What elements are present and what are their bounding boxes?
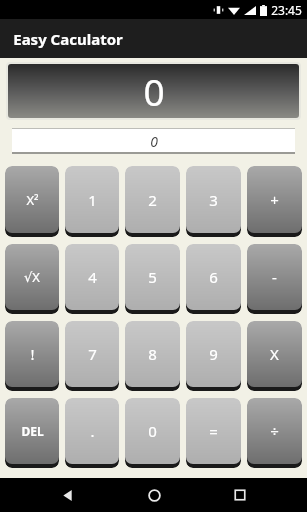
staticText: 1 bbox=[88, 190, 97, 210]
staticText: X bbox=[270, 344, 279, 364]
button[interactable]: - bbox=[247, 244, 302, 314]
button[interactable]: ÷ bbox=[247, 398, 302, 468]
button[interactable]: . bbox=[65, 398, 119, 468]
staticText: 5 bbox=[148, 267, 157, 287]
button[interactable]: √X bbox=[5, 244, 59, 314]
button[interactable]: 2 bbox=[125, 166, 180, 237]
staticText: ! bbox=[30, 344, 35, 364]
button[interactable]: Home bbox=[134, 478, 174, 512]
staticText: 4 bbox=[88, 267, 97, 287]
staticText: 3 bbox=[209, 190, 218, 210]
button[interactable]: 3 bbox=[186, 166, 241, 237]
staticText: Easy Caculator bbox=[13, 29, 123, 49]
staticText: 0 bbox=[143, 66, 165, 116]
staticText: + bbox=[270, 190, 279, 210]
button[interactable]: + bbox=[247, 166, 302, 237]
button[interactable]: ! bbox=[5, 321, 59, 391]
staticText: 9 bbox=[209, 344, 218, 364]
button[interactable]: 0 bbox=[125, 398, 180, 468]
button[interactable]: X bbox=[247, 321, 302, 391]
staticText: 6 bbox=[209, 267, 218, 287]
staticText: √X bbox=[24, 268, 40, 286]
staticText: 2 bbox=[148, 190, 157, 210]
staticText: 7 bbox=[88, 344, 97, 364]
staticText: = bbox=[209, 421, 218, 441]
staticText: 8 bbox=[148, 344, 157, 364]
staticText: ÷ bbox=[270, 421, 279, 441]
staticText: - bbox=[272, 267, 277, 287]
button[interactable]: 1 bbox=[65, 166, 119, 237]
button[interactable]: X² bbox=[5, 166, 59, 237]
staticText: 0 bbox=[148, 421, 157, 441]
button[interactable]: = bbox=[186, 398, 241, 468]
button[interactable]: Back bbox=[47, 478, 87, 512]
button[interactable]: Recent apps bbox=[220, 478, 260, 512]
button[interactable]: DEL bbox=[5, 398, 59, 468]
button[interactable]: 5 bbox=[125, 244, 180, 314]
staticText: DEL bbox=[21, 423, 44, 439]
button[interactable]: 7 bbox=[65, 321, 119, 391]
staticText: . bbox=[90, 421, 95, 441]
staticText: 23:45 bbox=[271, 2, 302, 18]
button[interactable]: 8 bbox=[125, 321, 180, 391]
staticText: 0 bbox=[150, 132, 158, 151]
button[interactable]: 6 bbox=[186, 244, 241, 314]
button[interactable]: 4 bbox=[65, 244, 119, 314]
button[interactable]: 9 bbox=[186, 321, 241, 391]
staticText: X² bbox=[26, 191, 39, 209]
